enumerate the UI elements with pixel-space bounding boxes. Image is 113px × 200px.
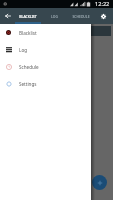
button[interactable]: Blacklist	[0, 24, 91, 41]
button[interactable]: SCHEDULE	[67, 8, 94, 24]
button[interactable]: Log	[0, 41, 91, 58]
button[interactable]: LOG	[41, 8, 67, 24]
button[interactable]: BLACKLIST	[15, 8, 41, 24]
staticText: LOG	[51, 14, 58, 19]
button[interactable]: Settings	[94, 8, 113, 24]
staticText: Blacklist	[19, 30, 37, 36]
staticText: Schedule	[19, 64, 39, 70]
button[interactable]: Schedule	[0, 58, 91, 75]
button[interactable]: Back	[0, 8, 15, 24]
staticText: SCHEDULE	[72, 14, 90, 19]
staticText: Settings	[19, 81, 37, 87]
button[interactable]: Add	[92, 175, 107, 190]
staticText: Log	[19, 47, 28, 53]
button[interactable]: Settings	[0, 75, 91, 92]
staticText: 12:22	[95, 0, 110, 8]
staticText: BLACKLIST	[19, 14, 37, 19]
